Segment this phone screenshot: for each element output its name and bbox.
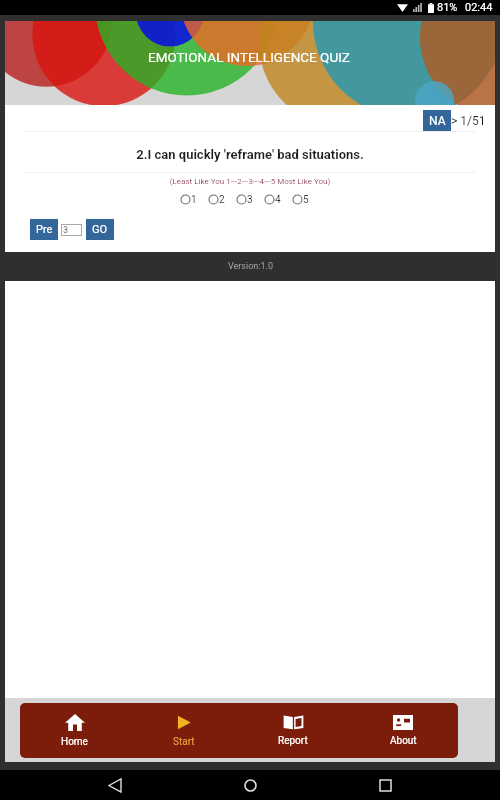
staticText: 81% [437, 1, 458, 14]
button[interactable]: About [348, 703, 458, 758]
staticText: (Least Like You 1---2---3---4---5 Most L… [5, 177, 495, 186]
staticText: GO [92, 223, 108, 236]
staticText: EMOTIONAL INTELLIGENCE QUIZ [148, 49, 350, 65]
button[interactable]: Back [95, 770, 135, 800]
button[interactable]: Recent apps [365, 770, 405, 800]
staticText: 2 [219, 194, 225, 206]
button[interactable]: 2 [208, 193, 225, 205]
staticText: 3 [247, 194, 253, 206]
staticText: 1 [191, 194, 197, 206]
staticText: Report [278, 735, 308, 747]
staticText: Start [173, 736, 195, 748]
button[interactable]: 1 [180, 193, 197, 205]
button[interactable]: Home [20, 703, 129, 758]
staticText: 3 [63, 225, 69, 236]
staticText: 02:44 [465, 1, 493, 14]
button[interactable]: Pre [30, 219, 58, 240]
button[interactable]: Report [238, 703, 348, 758]
staticText: 2.I can quickly 'reframe' bad situations… [5, 147, 495, 162]
button[interactable]: Start [129, 703, 238, 758]
staticText: 5 [303, 194, 309, 206]
button[interactable]: Home [230, 770, 270, 800]
staticText: About [390, 735, 417, 747]
staticText: NA [429, 114, 446, 128]
button[interactable]: 5 [292, 193, 309, 205]
button[interactable]: NA [423, 110, 451, 131]
staticText: 4 [275, 194, 281, 206]
staticText: Version:1.0 [228, 261, 273, 272]
staticText: > 1/51 [451, 114, 486, 128]
button[interactable]: 3 [236, 193, 253, 205]
staticText: Pre [36, 223, 53, 236]
button[interactable]: GO [86, 219, 114, 240]
staticText: Home [61, 736, 88, 748]
button[interactable]: 4 [264, 193, 281, 205]
